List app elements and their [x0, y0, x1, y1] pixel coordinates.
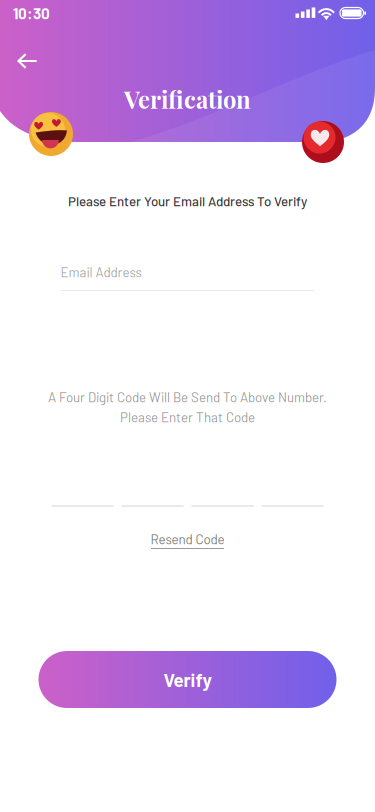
staticText: Please Enter Your Email Address To Verif…: [68, 193, 307, 209]
staticText: Email Address: [60, 264, 141, 280]
staticText: Please Enter That Code: [120, 409, 255, 425]
button[interactable]: Back: [5, 39, 49, 83]
staticText: Verify: [163, 668, 211, 691]
button[interactable]: Verify: [38, 651, 336, 708]
button[interactable]: Resend Code: [132, 529, 242, 551]
staticText: A Four Digit Code Will Be Send To Above …: [48, 389, 327, 405]
staticText: Resend Code: [150, 531, 224, 547]
staticText: 10:30: [13, 4, 50, 22]
staticText: Verification: [124, 83, 251, 115]
